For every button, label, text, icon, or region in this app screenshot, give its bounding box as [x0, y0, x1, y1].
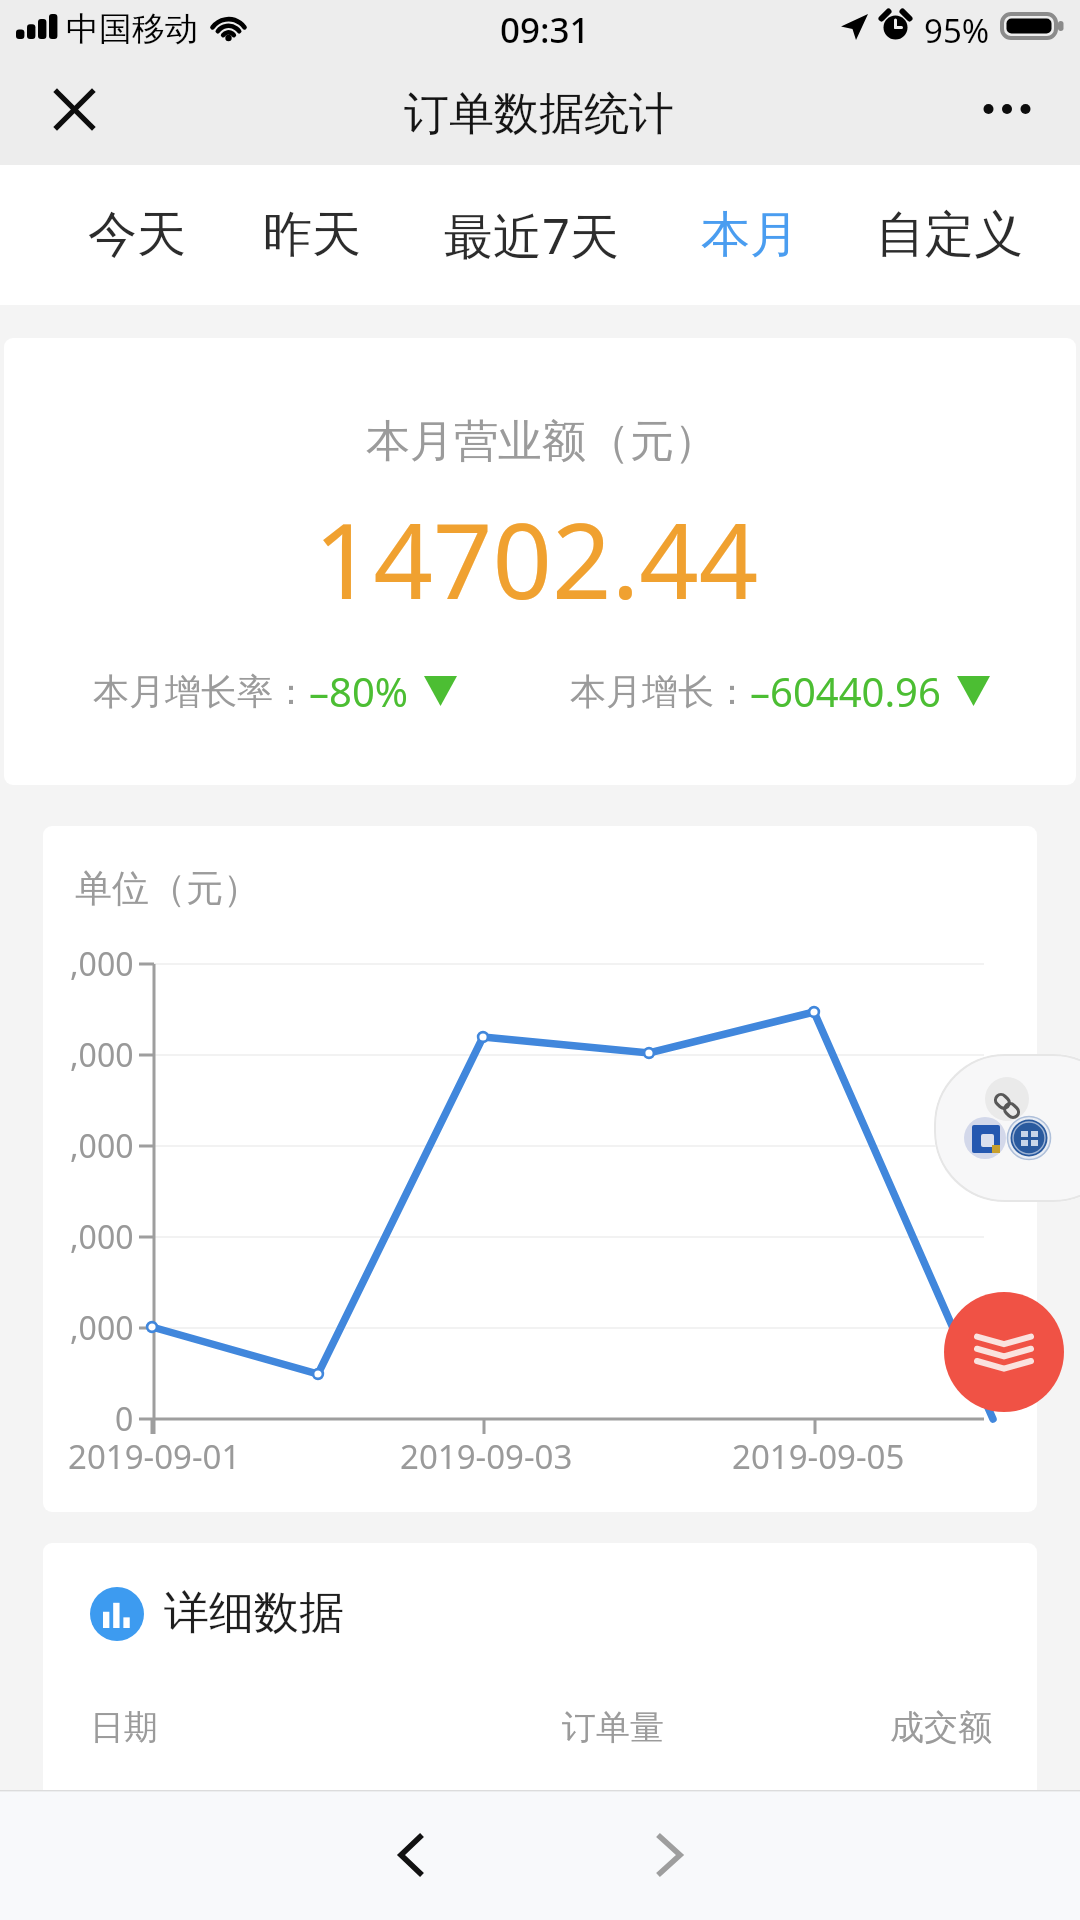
- button[interactable]: Back: [350, 1790, 472, 1920]
- button[interactable]: 自定义: [867, 165, 1032, 305]
- staticText: 中国移动: [66, 8, 198, 50]
- button[interactable]: More options: [955, 74, 1057, 162]
- staticText: 本月营业额（元）: [366, 414, 718, 469]
- button[interactable]: Menu: [944, 1292, 1064, 1412]
- staticText: 最近7天: [444, 202, 620, 269]
- button[interactable]: 昨天: [229, 165, 394, 305]
- staticText: 本月增长：: [570, 669, 750, 714]
- staticText: ,000: [70, 1306, 134, 1350]
- button[interactable]: 最近7天: [429, 165, 634, 305]
- staticText: ,000: [70, 1124, 134, 1168]
- button[interactable]: Close: [20, 70, 128, 165]
- staticText: 0: [115, 1397, 134, 1441]
- staticText: ,000: [70, 942, 134, 986]
- staticText: ,000: [70, 1033, 134, 1077]
- staticText: –80%: [309, 664, 408, 718]
- button[interactable]: Forward: [600, 1790, 722, 1920]
- button[interactable]: 今天: [54, 165, 219, 305]
- button[interactable]: Floating shortcuts: [934, 1054, 1080, 1202]
- staticText: 今天: [88, 204, 186, 266]
- staticText: 订单量: [562, 1706, 664, 1749]
- staticText: 09:31: [500, 6, 590, 54]
- staticText: 单位（元）: [75, 865, 260, 912]
- staticText: 成交额: [890, 1706, 992, 1749]
- staticText: 2019-09-05: [732, 1434, 905, 1479]
- staticText: 日期: [90, 1706, 158, 1749]
- staticText: 本月增长率：: [93, 669, 309, 714]
- staticText: 订单数据统计: [404, 86, 674, 143]
- staticText: 2019-09-01: [68, 1434, 241, 1479]
- staticText: ,000: [70, 1215, 134, 1259]
- staticText: –60440.96: [750, 664, 941, 718]
- staticText: 详细数据: [164, 1585, 344, 1642]
- staticText: 95%: [924, 8, 990, 53]
- staticText: 昨天: [263, 204, 361, 266]
- staticText: 本月: [701, 204, 799, 266]
- staticText: 14702.44: [314, 488, 759, 630]
- staticText: 2019-09-03: [400, 1434, 573, 1479]
- staticText: 自定义: [876, 204, 1023, 266]
- button[interactable]: 本月: [667, 165, 832, 305]
